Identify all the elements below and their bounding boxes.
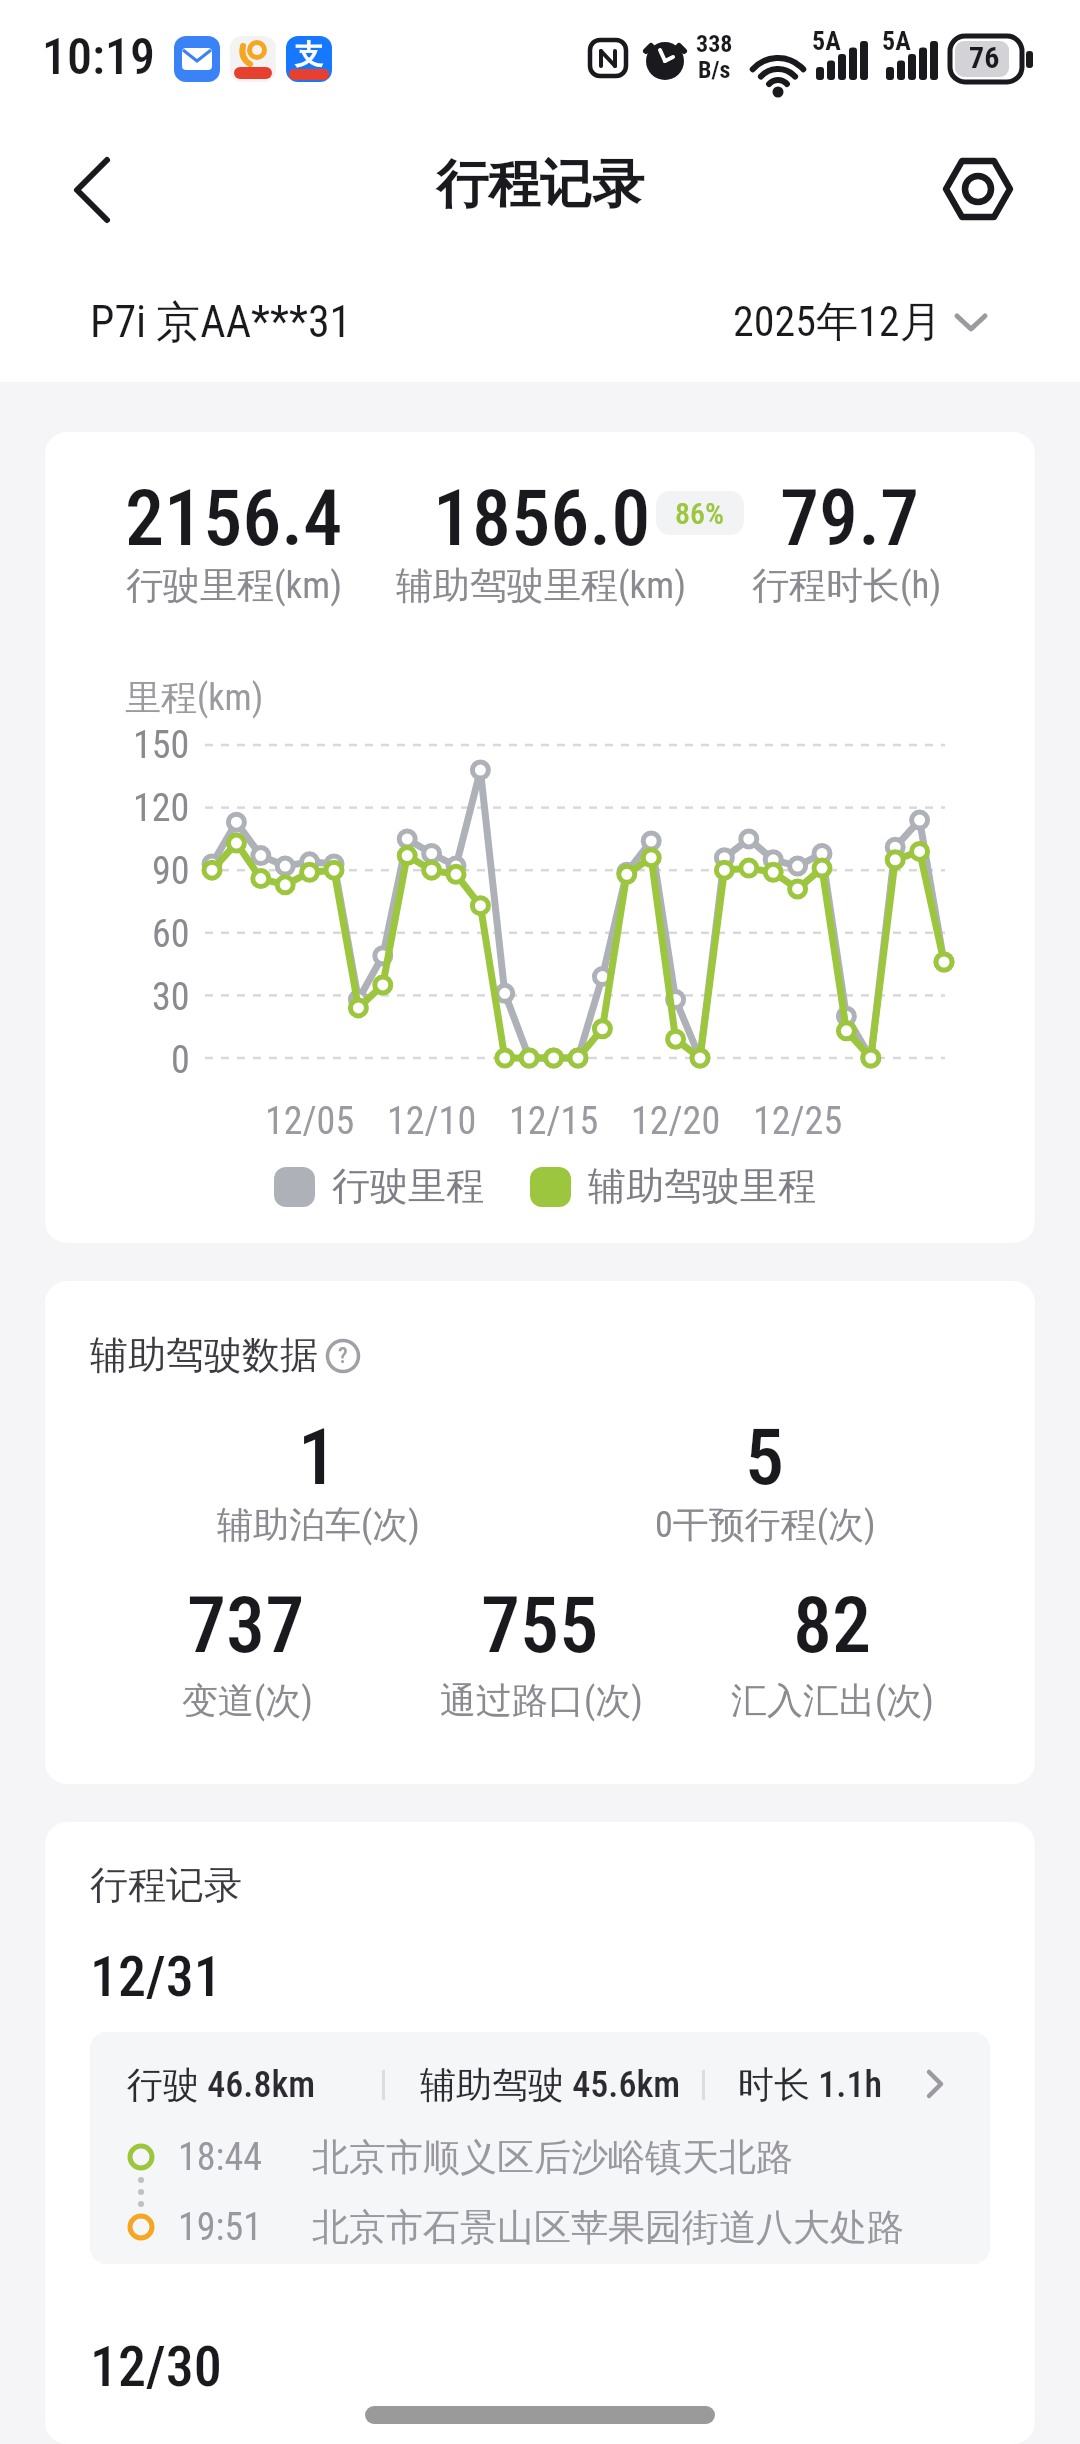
staticText: 30	[152, 975, 190, 1020]
staticText: 行程记录	[90, 1861, 242, 1909]
staticText: 辅助驾驶里程	[588, 1162, 816, 1210]
staticText: 86%	[675, 496, 725, 531]
button[interactable]	[936, 146, 1024, 238]
staticText: 2156.4	[125, 473, 343, 564]
staticText: 辅助驾驶数据	[90, 1331, 318, 1379]
button[interactable]: 2025年12月	[733, 296, 988, 349]
button[interactable]: 行驶 46.8km	[90, 2032, 990, 2264]
button[interactable]: ?	[325, 1338, 361, 1374]
staticText: 5A	[812, 26, 841, 56]
staticText: 12/30	[90, 2334, 222, 2400]
staticText: 行驶里程	[332, 1162, 484, 1210]
staticText: 737	[187, 1580, 305, 1671]
staticText: 辅助驾驶里程(km)	[396, 562, 686, 608]
staticText: 12/15	[509, 1099, 599, 1144]
staticText: P7i 京AA***31	[90, 295, 352, 350]
staticText: ?	[338, 1343, 348, 1369]
staticText: 82	[793, 1580, 872, 1671]
staticText: 1	[298, 1412, 338, 1503]
staticText: 5A	[882, 26, 911, 56]
staticText: 2025年12月	[733, 296, 942, 349]
staticText: 0	[171, 1038, 190, 1083]
staticText: 0干预行程(次)	[655, 1502, 876, 1547]
staticText: 76	[969, 40, 1000, 75]
staticText: 北京市石景山区苹果园街道八大处路	[312, 2204, 904, 2251]
staticText: 150	[133, 723, 190, 768]
staticText: 行程记录	[436, 152, 644, 218]
staticText: 行程时长(h)	[752, 562, 942, 608]
staticText: 12/25	[753, 1099, 843, 1144]
staticText: 18:44	[178, 2135, 262, 2180]
staticText: 通过路口(次)	[440, 1678, 643, 1723]
staticText: 5	[745, 1412, 785, 1503]
staticText: 行驶 46.8km	[127, 2062, 316, 2107]
staticText: 338	[696, 30, 733, 58]
staticText: 北京市顺义区后沙峪镇天北路	[312, 2134, 793, 2181]
staticText: 辅助泊车(次)	[217, 1502, 420, 1547]
staticText: 90	[152, 849, 190, 894]
staticText: 辅助驾驶 45.6km	[420, 2062, 681, 2107]
button[interactable]	[55, 140, 125, 210]
staticText: 12/31	[90, 1944, 222, 2010]
staticText: 19:51	[178, 2205, 262, 2250]
staticText: B/s	[698, 56, 731, 84]
staticText: 79.7	[780, 473, 920, 564]
staticText: 时长 1.1h	[738, 2062, 883, 2107]
staticText: 变道(次)	[182, 1678, 313, 1723]
staticText: 12/05	[265, 1099, 355, 1144]
staticText: 行驶里程(km)	[126, 562, 342, 608]
staticText: 755	[481, 1580, 599, 1671]
staticText: 12/20	[631, 1099, 721, 1144]
staticText: 支	[295, 37, 323, 72]
staticText: 汇入汇出(次)	[731, 1678, 934, 1723]
staticText: 12/10	[387, 1099, 477, 1144]
staticText: 里程(km)	[125, 675, 264, 720]
staticText: 1856.0	[433, 473, 651, 564]
staticText: 120	[133, 786, 190, 831]
staticText: 10:19	[42, 28, 156, 87]
staticText: 60	[152, 912, 190, 957]
